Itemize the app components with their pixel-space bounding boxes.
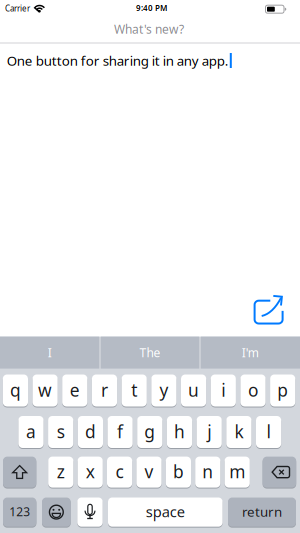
staticText: The [139, 345, 160, 360]
staticText: m [229, 460, 245, 483]
staticText: I [48, 345, 52, 360]
button[interactable]: v [136, 456, 162, 488]
button[interactable]: f [107, 415, 133, 448]
staticText: x [86, 460, 95, 483]
button[interactable]: b [166, 456, 191, 488]
button[interactable]: w [32, 374, 58, 407]
staticText: 123 [9, 504, 30, 519]
staticText: q [10, 378, 21, 401]
button[interactable]: Dictation [77, 497, 103, 527]
staticText: g [144, 420, 155, 443]
button[interactable]: d [78, 415, 103, 448]
button[interactable]: Shift [3, 456, 36, 488]
staticText: z [57, 460, 65, 483]
button[interactable]: y [151, 374, 176, 407]
button[interactable]: q [3, 374, 28, 407]
button[interactable]: k [226, 415, 251, 448]
button[interactable]: o [240, 374, 266, 407]
staticText: u [188, 378, 199, 401]
button[interactable]: c [107, 456, 132, 488]
button[interactable]: I'm [201, 337, 300, 369]
button[interactable]: return [228, 497, 296, 527]
staticText: s [57, 420, 65, 443]
staticText: i [221, 378, 225, 401]
button[interactable]: n [195, 456, 220, 488]
staticText: return [242, 503, 282, 520]
button[interactable]: e [62, 374, 87, 407]
button[interactable]: The [101, 337, 199, 369]
button[interactable]: t [122, 374, 147, 407]
button[interactable]: Share [248, 292, 288, 330]
staticText: r [101, 378, 108, 401]
staticText: One button for sharing it in any app. [7, 52, 229, 69]
button[interactable]: a [18, 415, 44, 448]
staticText: e [70, 378, 80, 401]
staticText: 9:40 PM [136, 3, 167, 13]
button[interactable]: l [256, 415, 281, 448]
staticText: What's new? [114, 21, 184, 37]
button[interactable]: u [181, 374, 206, 407]
staticText: k [234, 420, 243, 443]
staticText: w [38, 378, 52, 401]
button[interactable]: z [48, 456, 73, 488]
button[interactable]: Delete [263, 456, 296, 488]
staticText: b [173, 460, 184, 483]
button[interactable]: s [48, 415, 73, 448]
button[interactable]: Emoji [42, 497, 71, 527]
button[interactable]: x [78, 456, 103, 488]
staticText: t [131, 378, 137, 401]
button[interactable]: I [0, 337, 99, 369]
button[interactable]: m [225, 456, 250, 488]
button[interactable]: r [92, 374, 117, 407]
button[interactable]: space [108, 497, 223, 527]
staticText: d [85, 420, 96, 443]
staticText: p [277, 378, 288, 401]
button[interactable]: j [197, 415, 222, 448]
button[interactable]: 123 [3, 497, 36, 527]
staticText: l [267, 420, 271, 443]
staticText: n [202, 460, 213, 483]
staticText: h [174, 420, 185, 443]
staticText: c [116, 460, 124, 483]
staticText: space [146, 502, 185, 521]
button[interactable]: i [211, 374, 236, 407]
staticText: o [248, 378, 258, 401]
staticText: a [26, 420, 36, 443]
staticText: Carrier [5, 3, 30, 14]
button[interactable]: p [270, 374, 295, 407]
staticText: I'm [242, 345, 259, 360]
staticText: f [117, 420, 123, 443]
staticText: j [207, 420, 211, 443]
staticText: y [159, 378, 168, 401]
button[interactable]: h [167, 415, 192, 448]
button[interactable]: g [137, 415, 162, 448]
staticText: v [144, 460, 153, 483]
